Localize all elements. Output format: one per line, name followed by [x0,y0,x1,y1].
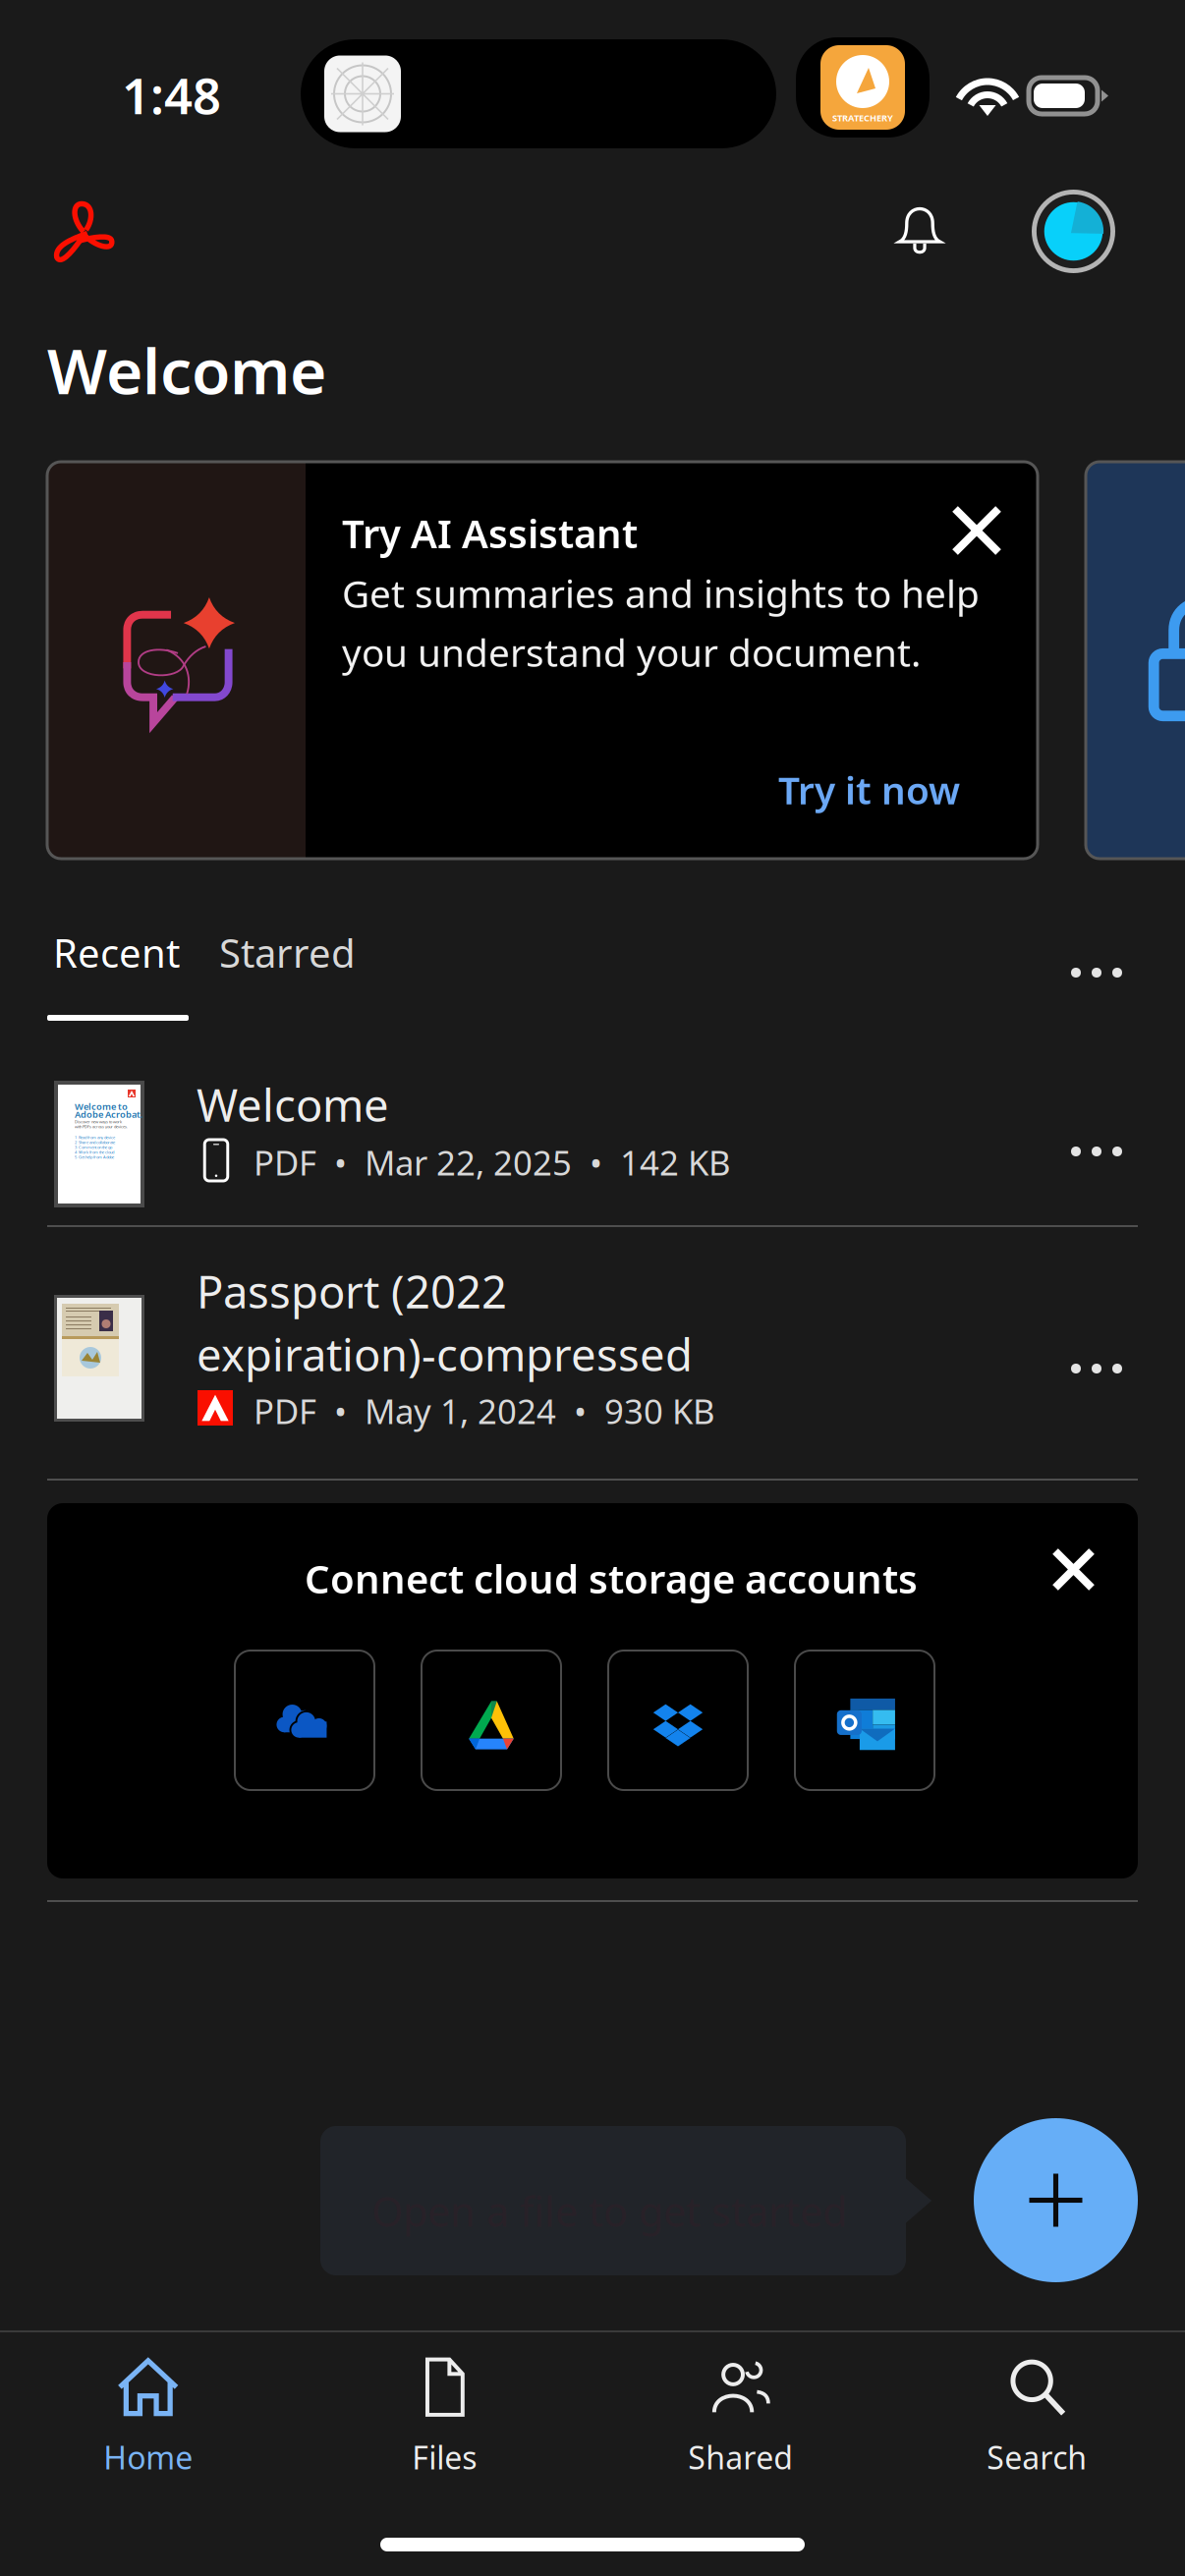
staticText: 5 Get help from Adobe [75,1154,114,1160]
staticText: Starred [219,926,356,979]
staticText: Welcome [47,328,326,412]
button[interactable]: Shared [592,2343,889,2491]
button[interactable]: Recent [43,915,190,990]
button[interactable]: Create [974,2118,1138,2282]
button[interactable]: Starred [209,915,366,990]
staticText: PDF • Mar 22, 2025 • 142 KB [254,1140,731,1185]
staticText: 2 Share and collaborate [75,1140,115,1145]
staticText: Welcome [197,1075,389,1134]
button[interactable]: More options [1047,944,1146,1001]
button[interactable]: Dropbox [608,1651,748,1790]
staticText: Try AI Assistant [342,507,638,559]
staticText: STRATECHERY [832,112,893,124]
button[interactable]: Notifications [880,185,959,272]
button[interactable]: Search [889,2343,1185,2491]
button[interactable]: Files [296,2343,592,2491]
button[interactable]: Protect PDF [1086,462,1185,859]
button[interactable]: Dismiss AI Assistant [937,491,1016,570]
staticText: with PDFs across your devices. [75,1124,128,1129]
staticText: Discover new ways to work [75,1119,122,1124]
button[interactable]: Adobe Acrobat [33,181,132,279]
button[interactable]: Try it now [766,755,972,825]
button[interactable]: OneDrive [235,1651,374,1790]
staticText: 3 Comment on the go [75,1145,112,1150]
staticText: PDF • May 1, 2024 • 930 KB [254,1388,715,1433]
staticText: Passport (2022 [197,1261,507,1321]
button[interactable]: Welcome to [0,1063,1185,1226]
button[interactable]: Google Drive [422,1651,561,1790]
button[interactable]: Home [0,2343,296,2491]
staticText: Shared [688,2436,793,2478]
staticText: 4 Work from the cloud [75,1149,114,1155]
button[interactable]: Dismiss cloud storage [1036,1532,1111,1607]
staticText: Recent [53,926,180,979]
button[interactable]: Account [1018,176,1129,287]
staticText: Search [987,2436,1087,2478]
button[interactable]: Passport (2022 [0,1256,1185,1468]
staticText: Adobe Acrobat. [75,1108,143,1120]
staticText: 1:48 [122,62,221,128]
staticText: Connect cloud storage accounts [305,1552,918,1604]
staticText: Home [103,2436,193,2478]
staticText: you understand your document. [342,627,921,677]
button[interactable]: Outlook [795,1651,934,1790]
staticText: Files [412,2436,477,2478]
staticText: expiration)-compressed [197,1324,693,1383]
staticText: Get summaries and insights to help [342,568,980,618]
staticText: Try it now [778,764,960,815]
staticText: 1 Read from any device [75,1135,115,1140]
staticText: Welcome to [75,1100,128,1113]
button[interactable]: Try AI Assistant [47,462,1038,859]
